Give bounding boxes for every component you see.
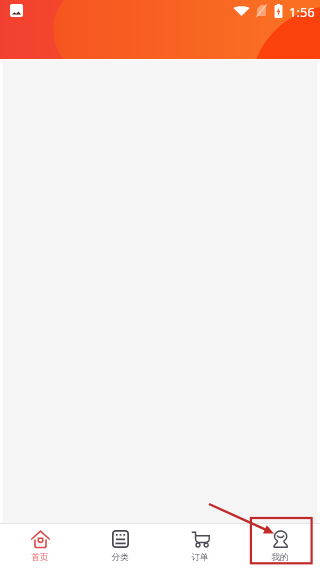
button[interactable]: 首页: [0, 524, 80, 568]
button[interactable]: 分类: [80, 524, 160, 568]
staticText: 订单: [191, 552, 209, 563]
button[interactable]: 我的: [240, 524, 320, 568]
staticText: 我的: [271, 552, 289, 563]
other: Image: [10, 4, 23, 17]
staticText: 1:56: [289, 3, 315, 18]
staticText: 首页: [31, 552, 49, 563]
button[interactable]: 订单: [160, 524, 240, 568]
staticText: 分类: [111, 552, 129, 563]
